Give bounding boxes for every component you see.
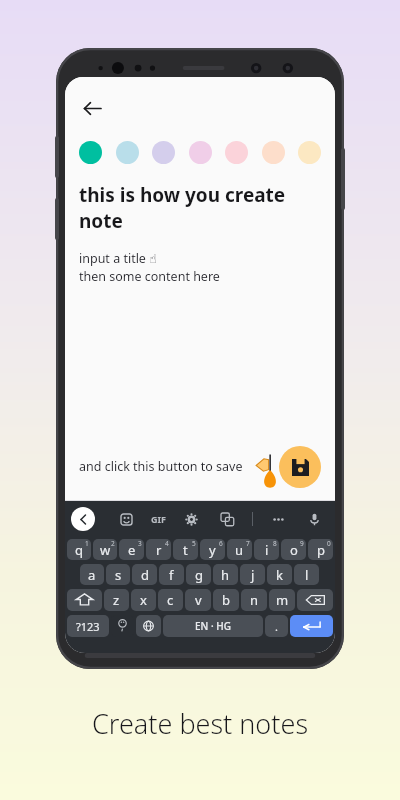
staticText: EN · HG — [195, 619, 231, 633]
button[interactable]: Backspace — [297, 589, 333, 611]
button[interactable]: Back — [75, 91, 109, 125]
button[interactable]: Save note — [279, 446, 321, 488]
button[interactable]: g — [186, 564, 211, 585]
staticText: f — [169, 566, 174, 584]
staticText: 2 — [111, 539, 115, 548]
button[interactable]: Shift — [67, 589, 102, 611]
staticText: z — [113, 591, 120, 609]
button[interactable]: e — [119, 539, 144, 560]
staticText: c — [167, 591, 174, 609]
staticText: p — [317, 541, 325, 559]
button[interactable]: Enter — [290, 615, 333, 637]
button[interactable] — [152, 141, 175, 164]
button[interactable]: k — [267, 564, 292, 585]
button[interactable]: Stickers — [115, 508, 137, 530]
staticText: Create best notes — [0, 705, 400, 742]
staticText: 1 — [85, 539, 89, 548]
staticText: s — [115, 566, 122, 584]
button[interactable]: i — [254, 539, 279, 560]
staticText: r — [156, 541, 162, 559]
staticText: u — [235, 541, 244, 559]
button[interactable]: p — [308, 539, 333, 560]
staticText: 4 — [165, 539, 169, 548]
button[interactable]: . — [265, 615, 288, 637]
button[interactable]: Settings — [180, 508, 202, 530]
staticText: q — [75, 541, 83, 559]
button[interactable]: t — [173, 539, 198, 560]
button[interactable]: b — [213, 589, 239, 611]
button[interactable] — [262, 141, 285, 164]
button[interactable]: More options — [267, 508, 289, 530]
button[interactable]: Translate — [216, 508, 238, 530]
staticText: v — [195, 591, 202, 609]
button[interactable] — [116, 141, 139, 164]
staticText: 9 — [300, 539, 304, 548]
button[interactable] — [189, 141, 212, 164]
staticText: this is how you create note — [79, 182, 321, 233]
button[interactable]: n — [241, 589, 267, 611]
button[interactable]: Voice input — [303, 508, 325, 530]
button[interactable] — [79, 141, 102, 164]
staticText: 8 — [273, 539, 277, 548]
staticText: w — [100, 541, 111, 559]
staticText: e — [128, 541, 136, 559]
staticText: 7 — [246, 539, 250, 548]
button[interactable]: x — [131, 589, 156, 611]
button[interactable]: l — [294, 564, 319, 585]
button[interactable]: w — [93, 539, 117, 560]
staticText: k — [276, 566, 283, 584]
button[interactable]: Change language — [136, 615, 161, 637]
staticText: x — [140, 591, 147, 609]
button[interactable]: EN · HG — [163, 615, 263, 637]
staticText: 0 — [327, 539, 331, 548]
button[interactable]: f — [159, 564, 184, 585]
staticText: g — [195, 566, 203, 584]
staticText: ?123 — [76, 619, 100, 634]
staticText: m — [276, 591, 289, 609]
button[interactable] — [225, 141, 248, 164]
button[interactable] — [298, 141, 321, 164]
staticText: 6 — [219, 539, 223, 548]
button[interactable]: v — [185, 589, 211, 611]
staticText: o — [290, 541, 298, 559]
button[interactable]: u — [227, 539, 252, 560]
button[interactable]: Collapse toolbar — [71, 507, 95, 531]
staticText: y — [209, 541, 216, 559]
staticText: l — [305, 566, 309, 584]
button[interactable]: o — [281, 539, 306, 560]
button[interactable]: GIF — [151, 513, 166, 525]
button[interactable]: ?123 — [67, 615, 109, 637]
button[interactable]: m — [269, 589, 295, 611]
staticText: d — [141, 566, 149, 584]
button[interactable]: Emoji — [111, 615, 134, 637]
button[interactable]: a — [80, 564, 104, 585]
staticText: . — [275, 619, 278, 634]
staticText: 3 — [138, 539, 142, 548]
button[interactable]: s — [106, 564, 130, 585]
staticText: input a title ☝ then some content here — [79, 250, 220, 285]
staticText: h — [221, 566, 230, 584]
staticText: 5 — [192, 539, 196, 548]
staticText: a — [88, 566, 96, 584]
button[interactable]: q — [67, 539, 91, 560]
staticText: b — [222, 591, 230, 609]
staticText: t — [183, 541, 188, 559]
button[interactable]: r — [146, 539, 171, 560]
button[interactable]: c — [158, 589, 183, 611]
button[interactable]: j — [240, 564, 265, 585]
staticText: i — [265, 541, 269, 559]
staticText: j — [251, 566, 255, 584]
button[interactable]: y — [200, 539, 225, 560]
button[interactable]: d — [132, 564, 157, 585]
staticText: and click this button to save — [79, 458, 243, 475]
staticText: n — [250, 591, 259, 609]
button[interactable]: h — [213, 564, 238, 585]
button[interactable]: z — [104, 589, 129, 611]
